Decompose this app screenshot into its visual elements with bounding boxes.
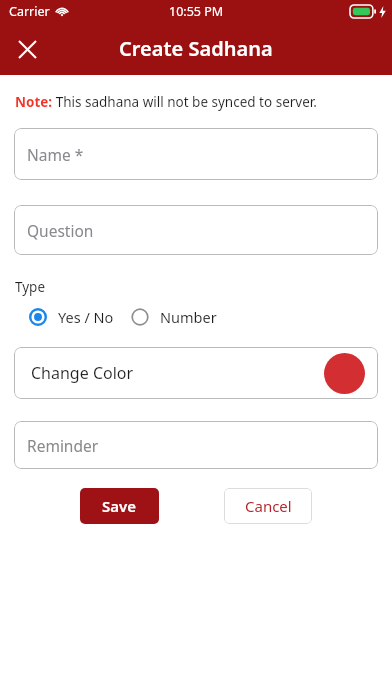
staticText: 10:55 PM xyxy=(169,3,224,20)
button[interactable]: Cancel xyxy=(224,488,312,524)
button[interactable]: Number xyxy=(131,307,217,327)
staticText: Carrier xyxy=(9,3,50,20)
button[interactable]: Save xyxy=(80,488,159,524)
staticText: Save xyxy=(102,496,137,516)
staticText: Change Color xyxy=(31,362,134,384)
staticText: Note: This sadhana will not be synced to… xyxy=(15,93,317,111)
button[interactable]: Change Color xyxy=(14,347,378,399)
staticText: Name * xyxy=(27,144,84,165)
button[interactable]: Close xyxy=(3,25,51,73)
staticText: Yes / No xyxy=(58,307,114,327)
staticText: Question xyxy=(27,220,94,241)
staticText: Create Sadhana xyxy=(119,35,273,62)
staticText: Cancel xyxy=(245,496,292,516)
staticText: Reminder xyxy=(27,435,99,456)
staticText: Number xyxy=(160,307,217,327)
staticText: Type xyxy=(15,278,46,296)
button[interactable]: Yes / No xyxy=(15,307,114,327)
button[interactable]: Question xyxy=(14,205,378,255)
button[interactable]: Reminder xyxy=(14,421,378,469)
button[interactable]: Name * xyxy=(14,128,378,180)
